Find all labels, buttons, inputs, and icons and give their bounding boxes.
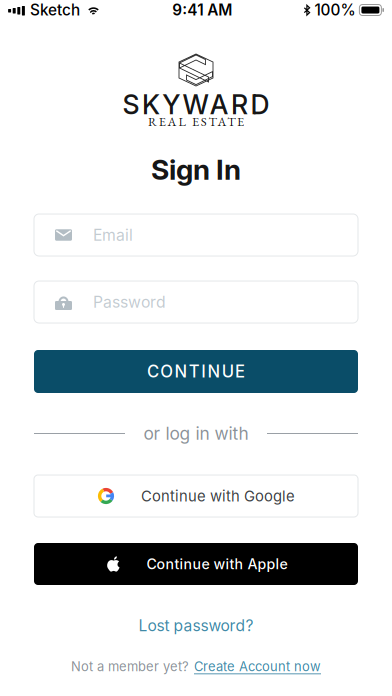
staticText: 100% <box>314 1 355 19</box>
staticText: CONTINUE <box>147 361 245 382</box>
staticText: Continue with Google <box>141 487 295 505</box>
staticText: Create Account now <box>194 659 321 674</box>
staticText: Sketch <box>30 1 80 19</box>
button[interactable]: Lost password? <box>116 617 276 634</box>
button[interactable]: CONTINUE <box>34 350 358 393</box>
staticText: REAL ESTATE <box>148 113 244 130</box>
staticText: SKYWARD <box>123 88 269 121</box>
staticText: 9:41 AM <box>172 1 232 19</box>
staticText: or log in with <box>143 423 248 444</box>
button[interactable]: Continue with Google <box>34 475 358 517</box>
staticText: Not a member yet? <box>71 659 189 674</box>
staticText: Sign In <box>151 153 241 186</box>
button[interactable]: Continue with Apple <box>34 543 358 585</box>
staticText: Lost password? <box>138 616 253 635</box>
staticText: Password <box>93 292 166 311</box>
staticText: Continue with Apple <box>146 555 287 572</box>
button[interactable]: Create Account now <box>194 659 321 674</box>
staticText: Email <box>93 225 133 244</box>
